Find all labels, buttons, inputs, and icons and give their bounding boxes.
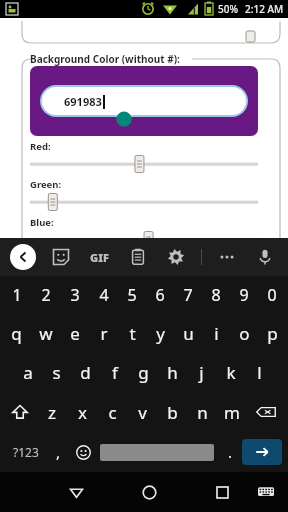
staticText: v (138, 401, 147, 424)
button[interactable]: k (216, 353, 245, 392)
staticText: 0 (267, 284, 277, 306)
button[interactable]: . (218, 437, 242, 467)
button[interactable]: Home (129, 472, 169, 512)
button[interactable]: ?123 (6, 437, 46, 467)
button[interactable]: 0 (258, 276, 286, 314)
staticText: 2:12 AM (245, 2, 284, 16)
button[interactable]: Settings (163, 244, 189, 270)
staticText: c (108, 401, 117, 424)
staticText: y (156, 322, 165, 345)
button[interactable]: i (202, 314, 230, 353)
button[interactable] (30, 156, 258, 172)
staticText: n (197, 401, 208, 424)
staticText: t (129, 322, 136, 345)
button[interactable]: 5 (118, 276, 146, 314)
staticText: 2 (41, 284, 51, 306)
staticText: a (23, 361, 33, 384)
button[interactable]: y (146, 314, 174, 353)
button[interactable]: Hide keyboard (248, 474, 284, 510)
button[interactable]: Recent apps (202, 472, 242, 512)
button[interactable]: 3 (60, 276, 89, 314)
button[interactable]: z (37, 392, 67, 432)
button[interactable]: Backspace (247, 392, 285, 432)
button[interactable]: o (230, 314, 258, 353)
button[interactable]: Back (56, 472, 96, 512)
button[interactable]: b (157, 392, 187, 432)
button[interactable]: l (245, 353, 274, 392)
staticText: 5 (127, 284, 137, 306)
staticText: , (56, 442, 61, 462)
button[interactable]: w (31, 314, 60, 353)
button[interactable] (30, 194, 258, 210)
staticText: p (267, 322, 278, 345)
button[interactable]: a (14, 353, 42, 392)
staticText: Red: (30, 140, 51, 153)
staticText: e (70, 322, 80, 345)
staticText: Background Color (without #): (30, 52, 180, 66)
button[interactable]: Voice input (252, 244, 278, 270)
staticText: z (48, 401, 56, 424)
button[interactable]: d (71, 353, 100, 392)
button[interactable]: Enter (242, 439, 282, 465)
staticText: k (226, 361, 236, 384)
staticText: 9 (239, 284, 249, 306)
button[interactable]: Shift (3, 392, 37, 432)
button[interactable]: 1 (2, 276, 31, 314)
button[interactable]: 8 (202, 276, 230, 314)
button[interactable]: Emoji (70, 437, 96, 467)
staticText: u (183, 322, 194, 345)
staticText: q (11, 322, 22, 345)
button[interactable]: 2 (31, 276, 60, 314)
button[interactable]: t (118, 314, 146, 353)
button[interactable]: f (100, 353, 129, 392)
button[interactable]: Back (10, 244, 36, 270)
staticText: ?123 (13, 444, 39, 460)
staticText: l (257, 361, 262, 384)
staticText: 3 (70, 284, 80, 306)
staticText: GIF (90, 250, 109, 265)
staticText: 8 (211, 284, 221, 306)
button[interactable]: s (42, 353, 71, 392)
staticText: g (138, 361, 149, 384)
button[interactable]: 7 (174, 276, 202, 314)
button[interactable]: Stickers (48, 244, 74, 270)
staticText: 691983 (64, 94, 102, 109)
button[interactable]: Space (100, 444, 214, 461)
staticText: m (224, 401, 240, 424)
staticText: . (228, 442, 233, 462)
staticText: d (80, 361, 91, 384)
button[interactable]: v (127, 392, 157, 432)
button[interactable]: Clipboard (125, 244, 151, 270)
button[interactable]: x (67, 392, 97, 432)
button[interactable]: q (2, 314, 31, 353)
button[interactable]: 691983 (42, 87, 246, 115)
button[interactable]: j (187, 353, 216, 392)
button[interactable]: More options (214, 244, 240, 270)
button[interactable]: h (158, 353, 187, 392)
staticText: s (52, 361, 61, 384)
button[interactable]: 691983 (30, 66, 258, 136)
button[interactable]: e (60, 314, 89, 353)
staticText: 7 (183, 284, 193, 306)
button[interactable]: , (46, 437, 70, 467)
button[interactable]: u (174, 314, 202, 353)
staticText: o (239, 322, 250, 345)
staticText: 50% (218, 2, 238, 16)
staticText: h (167, 361, 178, 384)
button[interactable]: g (129, 353, 158, 392)
staticText: w (39, 322, 53, 345)
button[interactable]: r (89, 314, 118, 353)
button[interactable]: c (97, 392, 127, 432)
staticText: b (167, 401, 178, 424)
button[interactable]: p (258, 314, 286, 353)
staticText: 6 (155, 284, 165, 306)
button[interactable]: 4 (89, 276, 118, 314)
button[interactable]: GIF (86, 246, 113, 269)
button[interactable]: 9 (230, 276, 258, 314)
button[interactable]: n (187, 392, 217, 432)
staticText: Blue: (30, 216, 54, 229)
button[interactable]: m (217, 392, 247, 432)
button[interactable]: 6 (146, 276, 174, 314)
button[interactable] (30, 232, 258, 248)
staticText: f (112, 361, 118, 384)
